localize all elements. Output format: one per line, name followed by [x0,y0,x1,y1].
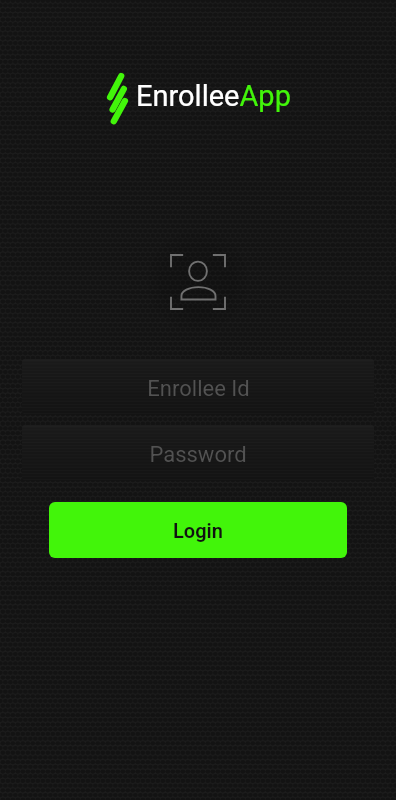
staticText: Password [149,442,247,468]
button[interactable]: Login [49,502,347,558]
other: Scan face [171,255,225,309]
button[interactable]: Enrollee Id [22,359,374,414]
staticText: Enrollee Id [147,376,250,402]
staticText: EnrolleeApp [136,79,291,113]
button[interactable]: Password [22,425,374,480]
staticText: Login [173,519,223,542]
